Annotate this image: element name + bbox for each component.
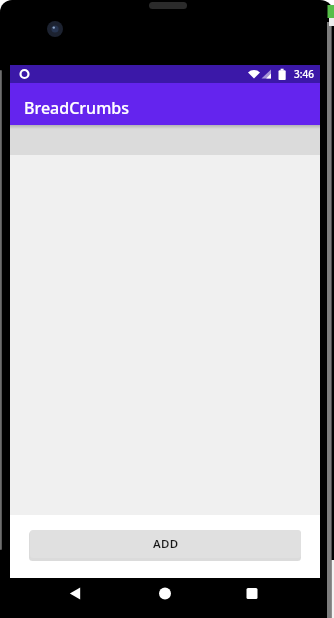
button[interactable] [63, 581, 87, 605]
button[interactable] [153, 581, 177, 605]
staticText: BreadCrumbs [24, 97, 129, 119]
staticText: ADD [153, 536, 179, 552]
button[interactable]: ADD [30, 530, 301, 558]
staticText: 3:46 [294, 67, 314, 81]
button[interactable] [240, 581, 264, 605]
